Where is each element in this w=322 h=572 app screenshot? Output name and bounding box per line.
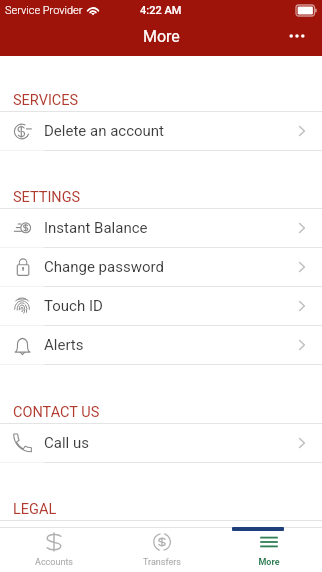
staticText: Alerts [44,336,296,354]
staticText: Instant Balance [44,219,296,237]
staticText: 4:22 AM [140,4,182,17]
button[interactable]: Instant Balance [0,209,322,248]
button[interactable]: Call us [0,424,322,463]
staticText: Touch ID [44,297,296,315]
button[interactable]: More options [281,20,313,52]
staticText: Change password [44,258,296,276]
staticText: Delete an account [44,122,296,140]
button[interactable]: Touch ID [0,287,322,326]
button[interactable]: Delete an account [0,112,322,151]
staticText: SETTINGS [13,189,81,206]
button[interactable]: Change password [0,248,322,287]
staticText: CONTACT US [13,404,100,421]
button[interactable]: Accounts [0,527,108,572]
staticText: SERVICES [13,92,79,109]
staticText: Transfers [143,557,181,568]
staticText: Service Provider [5,4,83,17]
button[interactable]: Transfers [108,527,215,572]
staticText: More [143,27,180,46]
button[interactable]: Alerts [0,326,322,365]
staticText: Accounts [35,557,73,568]
button[interactable]: More [215,527,322,572]
staticText: Call us [44,434,296,452]
staticText: LEGAL [13,501,57,518]
staticText: More [258,557,280,568]
